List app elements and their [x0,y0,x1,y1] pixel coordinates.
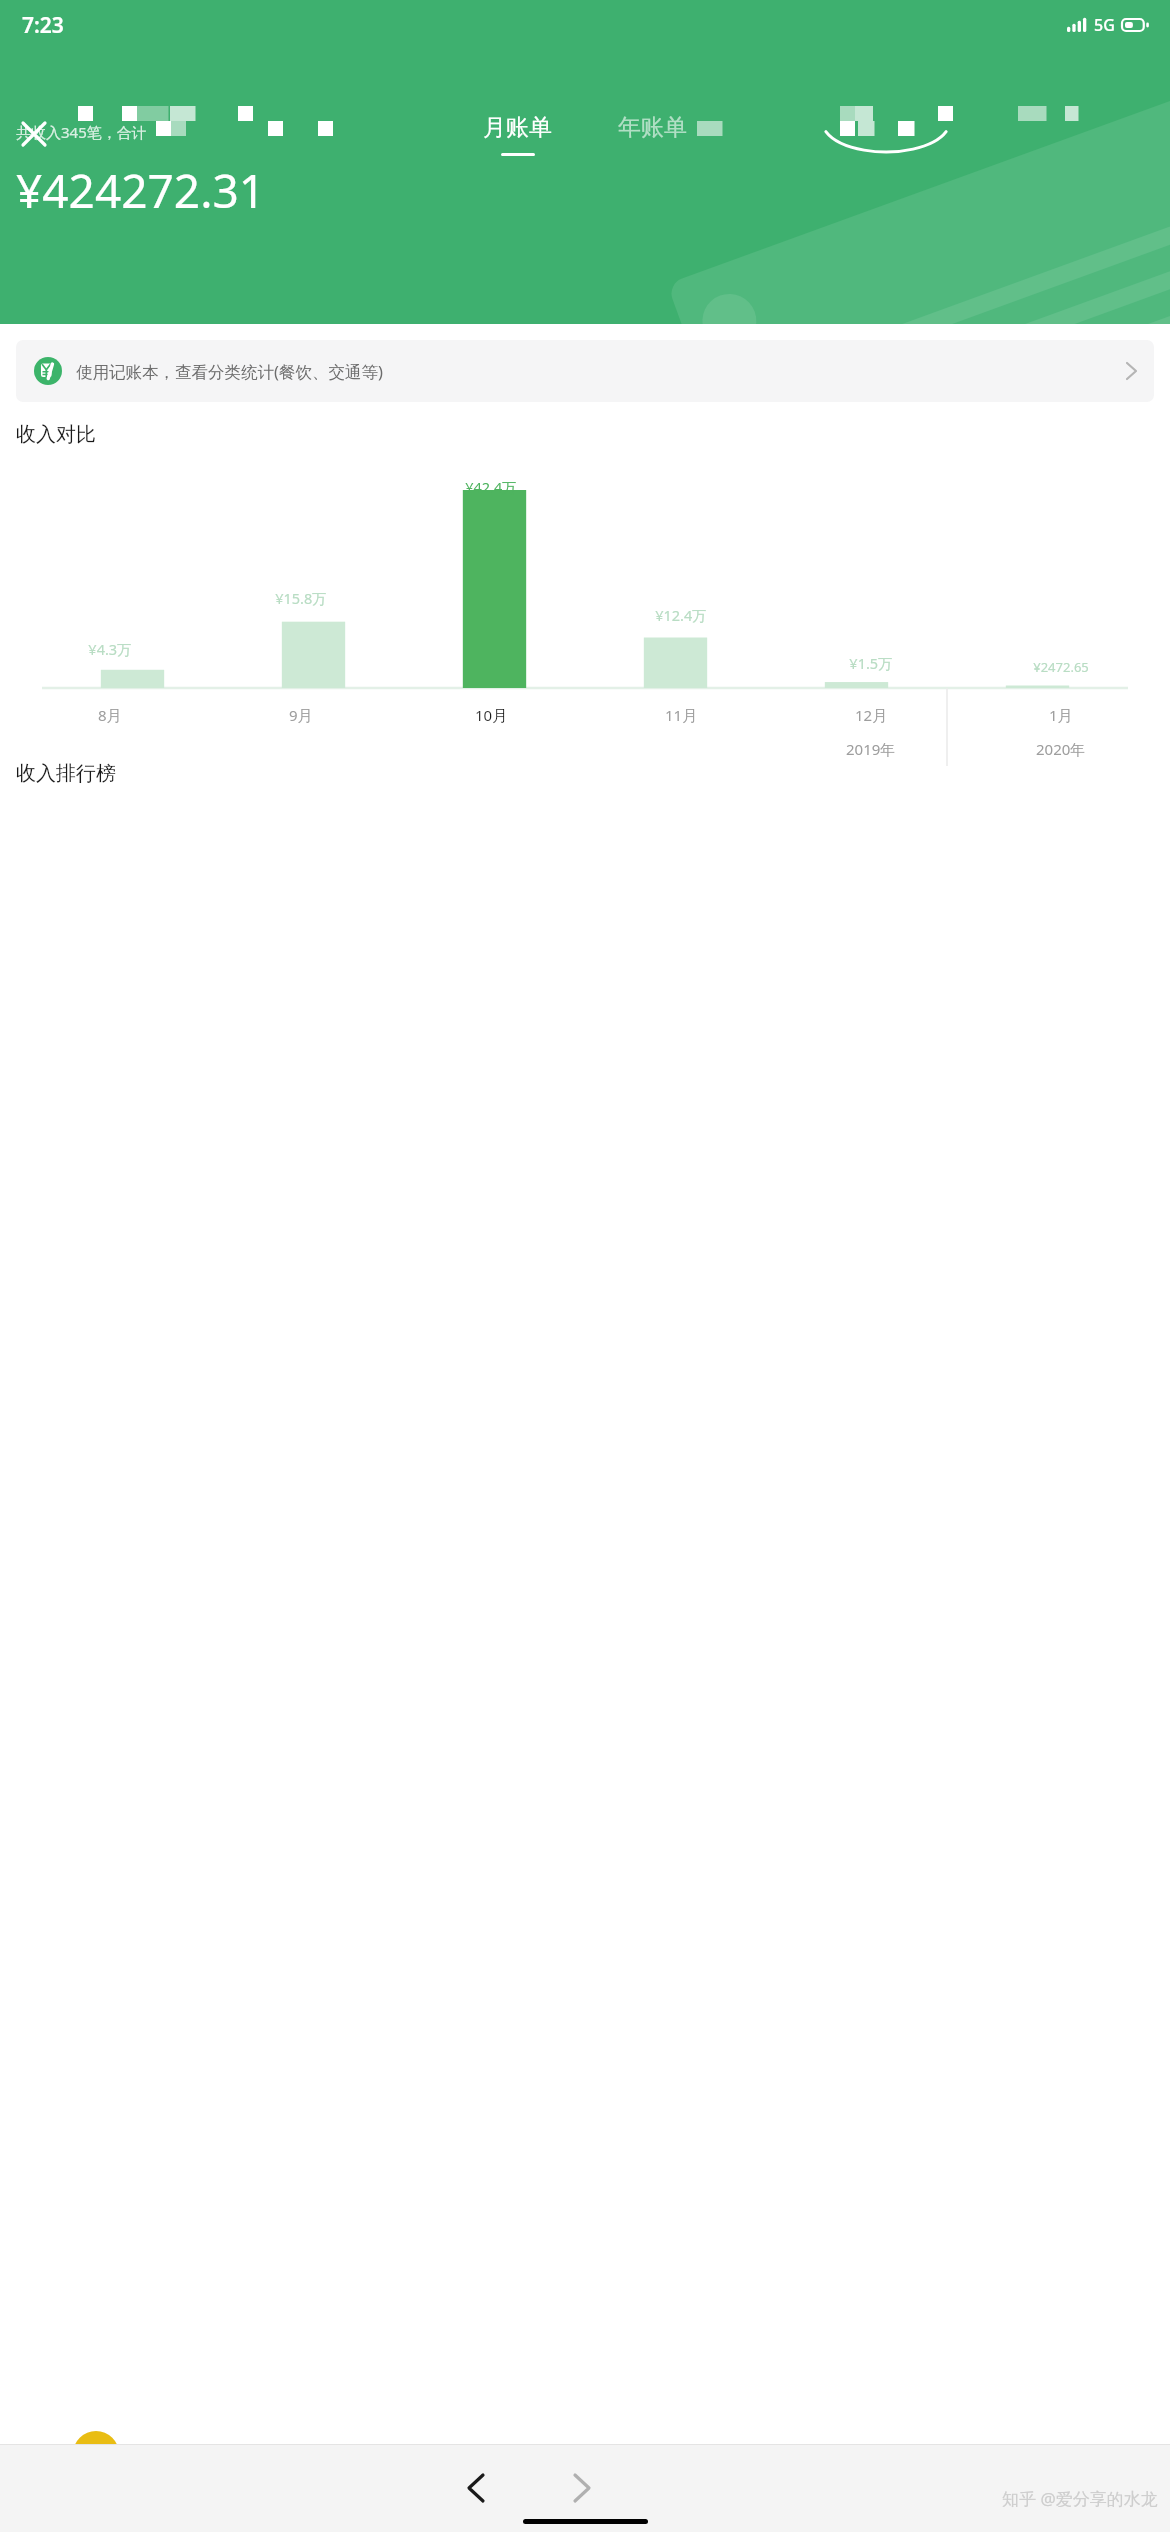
staticText: ¥424272.31 [16,159,266,222]
staticText: ¥1.5万 [849,653,893,673]
staticText: 11月 [665,705,698,725]
staticText: ¥12.4万 [655,605,707,625]
button[interactable]: 月账单 [463,109,572,160]
button[interactable]: 年账单 [598,109,707,160]
staticText: 12月 [855,705,888,725]
staticText: 使用记账本，查看分类统计(餐饮、交通等) [76,360,383,383]
staticText: ¥42.4万 [465,477,517,497]
staticText: 10月 [475,705,508,725]
staticText: 收入对比 [16,422,96,447]
staticText: 知乎 @爱分享的水龙 [1002,2487,1158,2510]
staticText: 年账单 [618,113,687,142]
staticText: ¥4.3万 [88,639,132,659]
staticText: 1月 [1049,705,1073,725]
button[interactable]: Back [445,2457,507,2519]
staticText: ¥2472.65 [1033,658,1089,676]
staticText: 9月 [289,705,313,725]
staticText: 2019年 [846,739,896,759]
staticText: 2020年 [1036,739,1086,759]
staticText: 7:23 [22,11,64,40]
staticText: 收入排行榜 [16,761,116,786]
button[interactable]: Close [6,106,62,162]
button[interactable]: 使用记账本，查看分类统计(餐饮、交通等) [16,340,1154,402]
staticText: 5G [1094,14,1115,36]
staticText: 8月 [98,705,122,725]
staticText: 共收入345笔，合计 [16,122,147,142]
staticText: 月账单 [483,113,552,142]
staticText: ¥15.8万 [275,588,327,608]
button[interactable]: Forward [551,2457,613,2519]
